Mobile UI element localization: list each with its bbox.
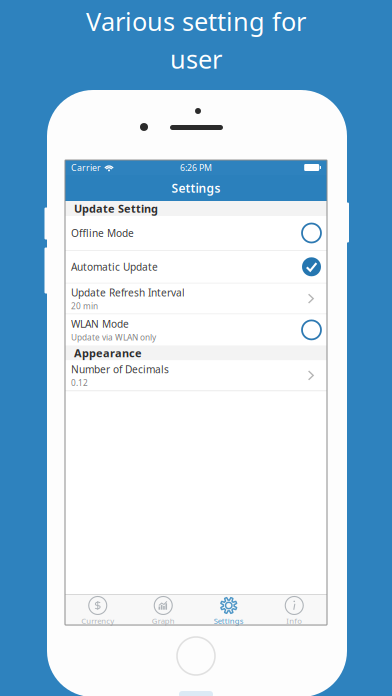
button[interactable]: Currency: [65, 595, 130, 625]
staticText: Automatic Update: [71, 260, 158, 274]
staticText: Update Refresh Interval: [71, 286, 185, 299]
staticText: Settings: [171, 180, 220, 196]
staticText: Graph: [152, 615, 175, 626]
staticText: Number of Decimals: [71, 362, 169, 376]
staticText: Appearance: [74, 345, 142, 360]
staticText: Offline Mode: [71, 226, 134, 240]
button[interactable]: Automatic Update: [65, 251, 327, 283]
staticText: 0.12: [71, 377, 88, 388]
button[interactable]: Update Refresh Interval: [65, 284, 327, 314]
staticText: Info: [286, 615, 302, 626]
button[interactable]: Info: [261, 595, 327, 625]
staticText: 20 min: [71, 300, 98, 312]
button[interactable]: Settings: [196, 595, 261, 625]
staticText: WLAN Mode: [71, 317, 129, 331]
button[interactable]: Number of Decimals: [65, 360, 327, 390]
staticText: Carrier: [71, 161, 101, 173]
button[interactable]: Graph: [130, 595, 196, 625]
staticText: Currency: [81, 615, 114, 626]
staticText: Various setting for: [86, 4, 306, 38]
staticText: Update Setting: [74, 201, 158, 216]
button[interactable]: Offline Mode: [65, 216, 327, 250]
staticText: Settings: [214, 615, 244, 626]
staticText: Update via WLAN only: [71, 332, 156, 343]
staticText: 6:26 PM: [180, 161, 212, 173]
staticText: user: [170, 42, 222, 76]
button[interactable]: WLAN Mode: [65, 314, 327, 345]
